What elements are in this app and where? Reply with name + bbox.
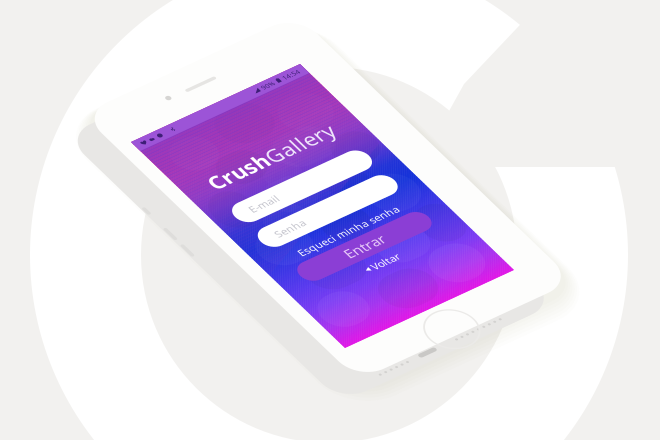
staticText: 14:54 [162,2,180,11]
button[interactable]: Senha [19,144,166,170]
button[interactable]: Entrar [22,196,163,221]
staticText: Gallery [88,64,160,92]
button[interactable]: Esqueci minha senha [19,180,166,192]
button[interactable]: E-mail [19,108,166,134]
button[interactable]: Voltar [19,227,166,239]
staticText: E-mail [35,114,66,128]
staticText: Senha [35,150,67,164]
staticText: Crush [25,64,88,92]
staticText: Esqueci minha senha [38,179,147,193]
